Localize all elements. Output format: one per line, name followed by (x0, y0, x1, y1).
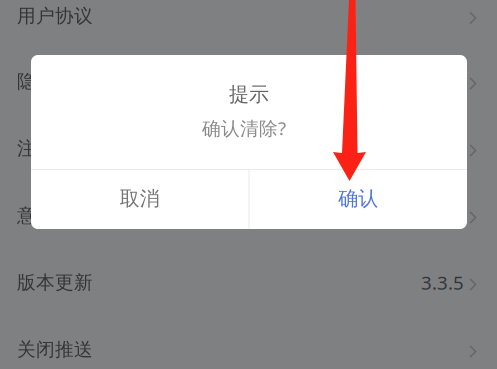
staticText: 确认 (338, 186, 378, 211)
button[interactable]: 注销账号 (0, 115, 497, 182)
staticText: 版本更新 (17, 271, 93, 294)
button[interactable]: 确认 (249, 170, 467, 229)
staticText: 注销账号 (17, 137, 93, 160)
staticText: 3.3.5 (421, 270, 464, 295)
staticText: 提示 (229, 82, 269, 107)
staticText: 用户协议 (17, 4, 93, 27)
staticText: 确认清除? (202, 116, 286, 140)
button[interactable]: 用户协议 (0, 0, 497, 48)
staticText: 意见反馈 (17, 204, 93, 227)
staticText: 取消 (120, 186, 160, 211)
staticText: 隐私政策 (17, 70, 93, 93)
button[interactable]: 取消 (31, 170, 248, 229)
button[interactable]: 隐私政策 (0, 48, 497, 115)
staticText: 关闭推送 (17, 338, 93, 361)
button[interactable]: 意见反馈 (0, 182, 497, 249)
button[interactable]: 版本更新 (0, 249, 497, 316)
button[interactable]: 关闭推送 (0, 316, 497, 369)
